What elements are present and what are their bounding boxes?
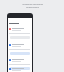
other: App icon — [9, 68, 11, 70]
button[interactable]: App icon — [8, 59, 32, 70]
staticText: Automate incoming notifications — [22, 3, 43, 9]
button[interactable]: App icon — [8, 68, 32, 72]
other: App icon — [9, 59, 11, 61]
button[interactable] — [10, 67, 30, 70]
button[interactable]: App icon — [8, 44, 32, 55]
other: App icon — [9, 28, 11, 30]
other: App icon — [9, 44, 11, 46]
button[interactable]: App icon — [8, 28, 32, 39]
